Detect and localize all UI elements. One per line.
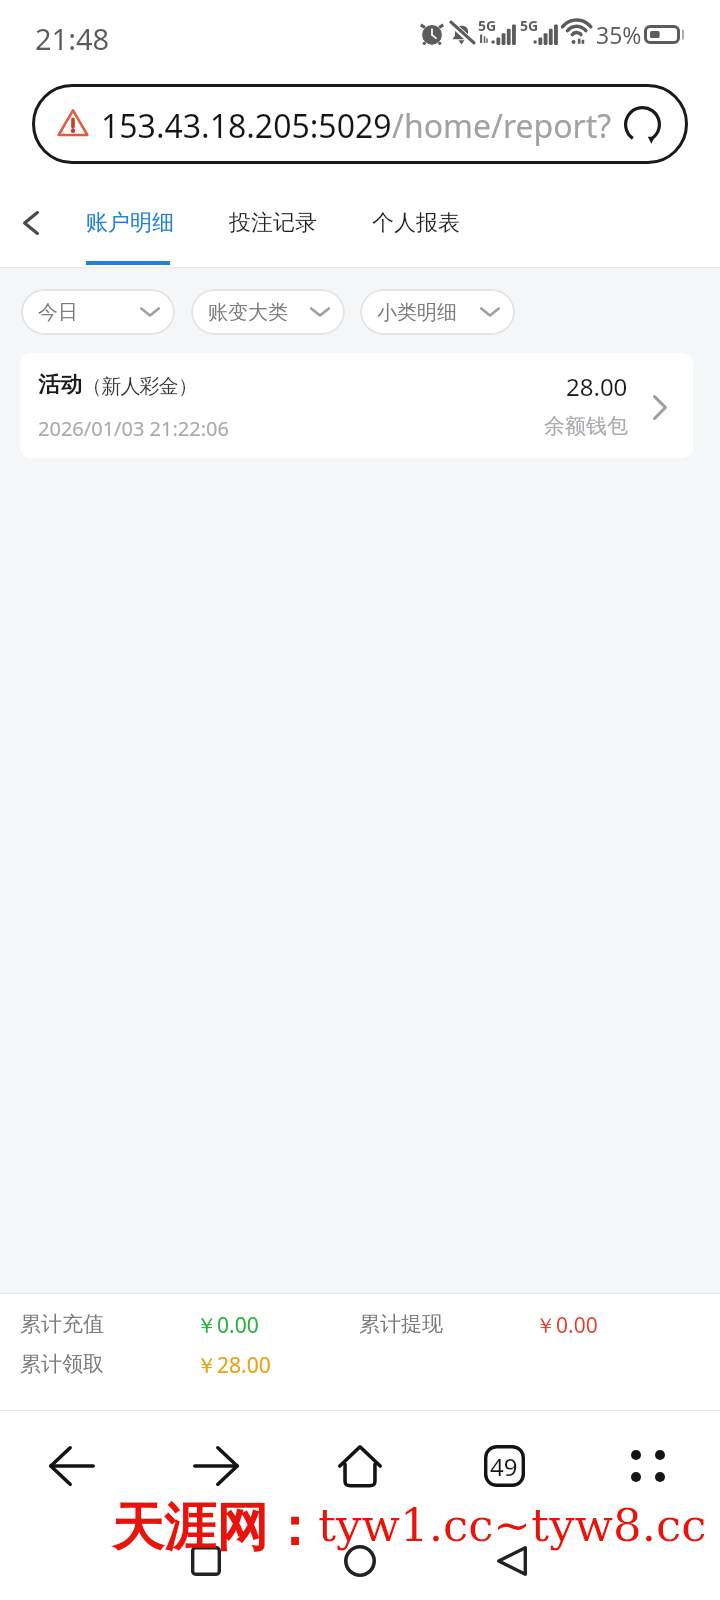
staticText: 28.00	[566, 370, 628, 403]
button[interactable]: 153.43.18.205:5029	[32, 84, 688, 164]
button[interactable]: 活动	[20, 353, 693, 458]
button[interactable]: Recents	[172, 1527, 240, 1595]
staticText: ￥0.00	[535, 1311, 598, 1340]
staticText: 账户明细	[86, 209, 174, 237]
staticText: 2026/01/03 21:22:06	[38, 415, 229, 442]
staticText: 5G	[478, 16, 497, 35]
staticText: 累计充值	[20, 1311, 104, 1337]
button[interactable]: Tabs	[462, 1424, 546, 1508]
staticText: （新人彩金）	[82, 374, 198, 399]
button[interactable]: Back	[30, 1424, 114, 1508]
staticText: 35%	[596, 19, 642, 50]
staticText: 21:48	[35, 19, 110, 58]
staticText: 累计领取	[20, 1351, 104, 1377]
staticText: 投注记录	[229, 209, 317, 237]
staticText: 天涯网：	[112, 1495, 320, 1561]
staticText: 活动	[38, 371, 82, 399]
staticText: 累计提现	[359, 1311, 443, 1337]
staticText: /home/report?	[392, 104, 612, 148]
button[interactable]: Reload	[617, 99, 667, 149]
staticText: 小类明细	[377, 300, 457, 325]
button[interactable]: Back	[0, 192, 62, 254]
staticText: 今日	[38, 300, 78, 325]
button[interactable]: 账户明细	[72, 192, 188, 254]
button[interactable]: Home	[318, 1424, 402, 1508]
button[interactable]: 今日	[21, 289, 175, 335]
button[interactable]: 投注记录	[215, 192, 331, 254]
button[interactable]: Back	[478, 1527, 546, 1595]
button[interactable]: Menu	[606, 1424, 690, 1508]
staticText: 账变大类	[208, 300, 288, 325]
button[interactable]: 账变大类	[191, 289, 345, 335]
button[interactable]: Home	[326, 1527, 394, 1595]
staticText: ￥28.00	[196, 1351, 271, 1380]
button[interactable]: 小类明细	[360, 289, 515, 335]
staticText: 余额钱包	[544, 413, 628, 439]
staticText: ￥0.00	[196, 1311, 259, 1340]
staticText: 49	[490, 1450, 518, 1483]
button[interactable]: 个人报表	[358, 192, 474, 254]
staticText: 个人报表	[372, 209, 460, 237]
button[interactable]: Forward	[174, 1424, 258, 1508]
staticText: 153.43.18.205:5029	[101, 104, 392, 148]
staticText: tyw1.cc~tyw8.cc	[318, 1499, 707, 1551]
staticText: 5G	[520, 16, 539, 35]
